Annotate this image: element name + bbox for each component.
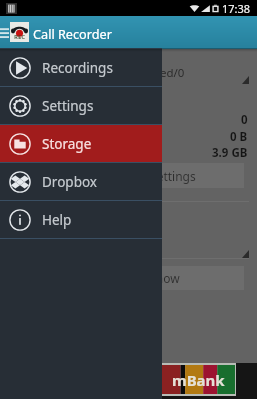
staticText: 0 xyxy=(241,112,248,128)
button[interactable]: Help xyxy=(0,201,162,238)
staticText: REC xyxy=(14,33,26,41)
staticText: Call Recorder xyxy=(33,25,112,42)
button[interactable]: mBank xyxy=(162,365,235,394)
button[interactable]: Storage xyxy=(0,125,162,162)
staticText: Settings xyxy=(42,97,94,115)
button[interactable]: Settings xyxy=(0,87,162,124)
staticText: Dropbox xyxy=(42,173,97,191)
button[interactable]: Clean now xyxy=(56,266,244,290)
staticText: Help xyxy=(42,211,72,229)
staticText: 0 B xyxy=(230,129,248,145)
button[interactable]: Not selected/0 xyxy=(14,62,249,84)
staticText: Storage settings xyxy=(104,168,196,184)
staticText: Clean now xyxy=(121,270,180,286)
button[interactable]: Recordings xyxy=(0,49,162,86)
staticText: mBank xyxy=(172,370,225,390)
staticText: 17:38 xyxy=(222,1,251,16)
staticText: Not selected/0 xyxy=(106,65,185,81)
staticText: Recordings xyxy=(42,59,113,77)
staticText: 3.9 GB xyxy=(212,145,248,161)
staticText: Storage xyxy=(42,135,92,153)
button[interactable]: Storage settings xyxy=(56,163,244,188)
button[interactable]: Open navigation drawer xyxy=(0,27,9,39)
button[interactable]: Dropbox xyxy=(0,163,162,200)
